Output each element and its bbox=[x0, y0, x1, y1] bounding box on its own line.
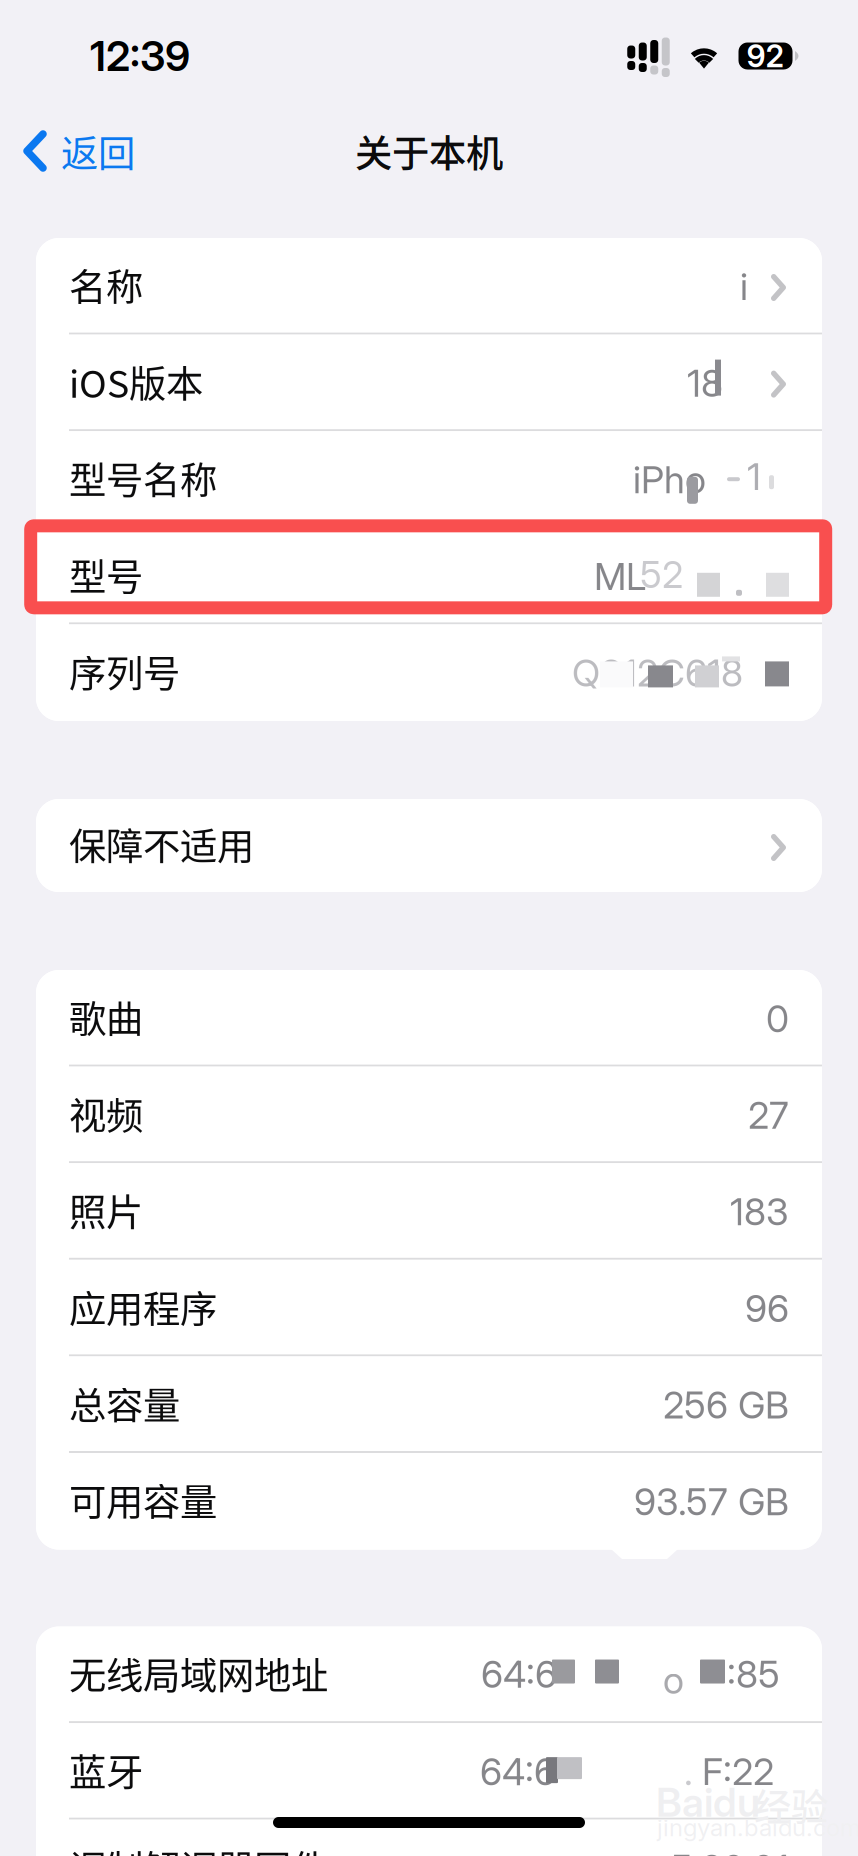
staticText: 保障不适用 bbox=[69, 817, 254, 871]
button[interactable]: 保障不适用 bbox=[36, 799, 822, 892]
staticText: 92 bbox=[746, 37, 784, 74]
staticText: 调制解调器固件 bbox=[69, 1839, 328, 1856]
staticText: 64:6 bbox=[480, 1749, 556, 1794]
staticText: 183 bbox=[730, 1189, 789, 1234]
staticText: 应用程序 bbox=[69, 1280, 217, 1334]
button[interactable]: 名称 bbox=[36, 238, 822, 335]
staticText: 256 GB bbox=[663, 1382, 789, 1428]
staticText: 12:39 bbox=[90, 31, 190, 81]
button[interactable]: 歌曲 bbox=[36, 970, 822, 1067]
staticText: 关于本机 bbox=[355, 124, 503, 178]
button[interactable]: 蓝牙 bbox=[36, 1723, 822, 1820]
staticText: 52 bbox=[640, 552, 683, 597]
button[interactable]: iOS版本 bbox=[36, 335, 822, 431]
staticText: 总容量 bbox=[69, 1376, 180, 1430]
staticText: 无线局域网地址 bbox=[69, 1646, 328, 1700]
staticText: 27 bbox=[748, 1093, 789, 1138]
staticText: 歌曲 bbox=[69, 990, 143, 1044]
staticText: iOS版本 bbox=[69, 354, 203, 408]
button[interactable]: 总容量 bbox=[36, 1356, 822, 1453]
staticText: 64:6 bbox=[481, 1651, 557, 1697]
staticText: Baidu bbox=[656, 1778, 760, 1826]
staticText: iPho bbox=[633, 457, 706, 502]
staticText: 蓝牙 bbox=[69, 1743, 143, 1797]
button[interactable]: 照片 bbox=[36, 1163, 822, 1260]
button[interactable]: 视频 bbox=[36, 1067, 822, 1163]
staticText: 可用容量 bbox=[69, 1473, 217, 1527]
staticText: ML bbox=[594, 554, 646, 599]
staticText: 型号 bbox=[69, 548, 143, 602]
staticText: 名称 bbox=[69, 258, 143, 312]
staticText: 93.57 GB bbox=[634, 1479, 789, 1524]
button[interactable]: 型号名称 bbox=[36, 431, 822, 528]
staticText: i bbox=[740, 264, 748, 309]
staticText: . bbox=[684, 1749, 693, 1794]
staticText: 18 bbox=[687, 361, 723, 406]
staticText: jingyan.baidu.com bbox=[657, 1813, 858, 1842]
staticText: 1 bbox=[747, 454, 761, 499]
button[interactable]: 返回 bbox=[3, 118, 155, 184]
staticText: :85 bbox=[727, 1651, 780, 1697]
staticText: 0 bbox=[766, 996, 789, 1041]
staticText: 照片 bbox=[69, 1183, 143, 1237]
staticText: Q312C618 bbox=[572, 650, 743, 696]
staticText: 5.20.01 bbox=[671, 1846, 789, 1856]
staticText: 96 bbox=[745, 1286, 789, 1331]
button[interactable]: 应用程序 bbox=[36, 1260, 822, 1356]
button[interactable]: 型号 bbox=[36, 528, 822, 624]
button[interactable]: 可用容量 bbox=[36, 1453, 822, 1550]
button[interactable]: 无线局域网地址 bbox=[36, 1626, 822, 1723]
staticText: 型号名称 bbox=[69, 451, 217, 505]
staticText: F:22 bbox=[702, 1749, 774, 1794]
staticText: 返回 bbox=[61, 124, 135, 178]
button[interactable]: 序列号 bbox=[36, 624, 822, 721]
staticText: 序列号 bbox=[69, 644, 180, 698]
staticText: 视频 bbox=[69, 1086, 143, 1140]
staticText: 经验 bbox=[754, 1778, 828, 1832]
staticText: o bbox=[663, 1657, 684, 1703]
button[interactable]: 调制解调器固件 bbox=[36, 1820, 822, 1856]
